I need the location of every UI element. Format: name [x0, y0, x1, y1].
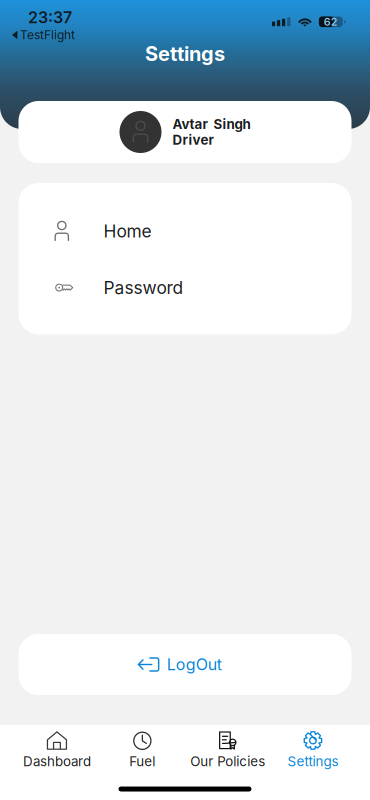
- button[interactable]: Password: [18, 259, 351, 316]
- staticText: TestFlight: [20, 28, 75, 42]
- button[interactable]: LogOut: [18, 634, 351, 695]
- staticText: LogOut: [167, 655, 222, 674]
- staticText: Settings: [287, 753, 338, 769]
- button[interactable]: Dashboard: [14, 724, 100, 773]
- staticText: Home: [103, 221, 151, 241]
- button[interactable]: Our Policies: [185, 724, 270, 773]
- staticText: Fuel: [129, 753, 155, 769]
- staticText: Our Policies: [190, 753, 265, 769]
- staticText: Driver: [172, 132, 213, 148]
- button[interactable]: Home: [18, 203, 351, 259]
- button[interactable]: Settings: [270, 724, 356, 773]
- button[interactable]: Fuel: [100, 724, 185, 773]
- staticText: Avtar Singh: [172, 116, 250, 132]
- staticText: Password: [103, 277, 183, 298]
- staticText: 62: [324, 15, 338, 28]
- staticText: Settings: [145, 42, 225, 66]
- staticText: Dashboard: [23, 753, 91, 769]
- staticText: 23:37: [28, 8, 72, 27]
